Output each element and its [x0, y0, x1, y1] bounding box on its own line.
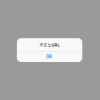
staticText: OK	[46, 54, 52, 59]
staticText: 不正なURL	[40, 42, 60, 47]
button[interactable]: OK	[16, 51, 82, 62]
